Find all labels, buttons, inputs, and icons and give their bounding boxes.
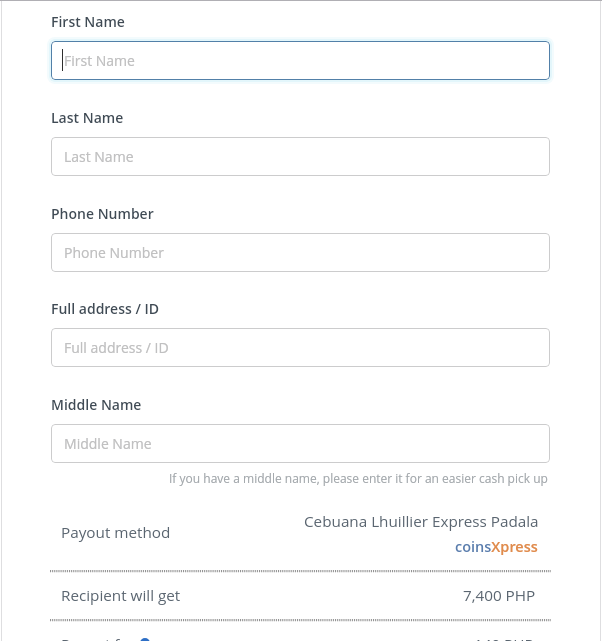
- staticText: If you have a middle name, please enter …: [169, 470, 548, 486]
- staticText: Middle Name: [51, 395, 142, 414]
- staticText: Full address / ID: [64, 338, 169, 357]
- staticText: 7,400 PHP: [463, 585, 536, 606]
- button[interactable]: Last Name: [51, 137, 550, 176]
- staticText: Phone Number: [51, 204, 154, 223]
- button[interactable]: Full address / ID: [51, 328, 550, 367]
- staticText: Last Name: [51, 108, 124, 127]
- staticText: Phone Number: [64, 243, 164, 262]
- staticText: Payout fee: [61, 634, 137, 641]
- button[interactable]: First Name: [51, 41, 550, 80]
- staticText: Full address / ID: [51, 299, 160, 318]
- staticText: Cebuana Lhuillier Express Padala: [304, 511, 539, 532]
- staticText: Payout method: [61, 522, 171, 543]
- button[interactable]: Phone Number: [51, 233, 550, 272]
- staticText: Middle Name: [64, 434, 152, 453]
- staticText: coinsXpress: [455, 537, 538, 557]
- staticText: First Name: [64, 51, 135, 70]
- button[interactable]: Payout fee information: [140, 638, 150, 641]
- staticText: First Name: [51, 12, 125, 31]
- staticText: Recipient will get: [61, 585, 181, 606]
- staticText: Last Name: [64, 147, 134, 166]
- button[interactable]: Middle Name: [51, 424, 550, 463]
- staticText: 140 PHP: [474, 634, 534, 641]
